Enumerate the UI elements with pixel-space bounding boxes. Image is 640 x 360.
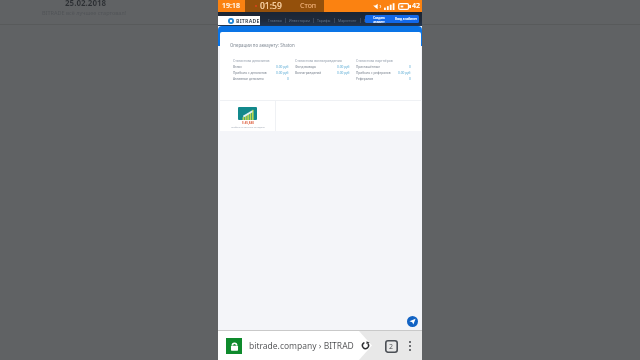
- staticText: 2: [389, 342, 394, 352]
- staticText: 0.00 руб: [337, 71, 350, 75]
- staticText: 19:18: [222, 1, 240, 11]
- staticText: Рефералов: [356, 77, 409, 81]
- button[interactable]: Маркетинг: [338, 18, 357, 23]
- staticText: Прибыль от BITRADE за неделю: [231, 126, 265, 129]
- staticText: 0.00 руб: [276, 71, 289, 75]
- button[interactable]: Инвесторам: [289, 18, 310, 23]
- staticText: Взнос: [233, 65, 276, 69]
- button[interactable]: Вопросы: [364, 18, 380, 23]
- staticText: Активные депозиты: [233, 77, 287, 81]
- staticText: Прибыль с депозитов: [233, 71, 276, 75]
- staticText: 0: [409, 65, 411, 69]
- staticText: Инвесторам: [289, 18, 310, 23]
- staticText: Вход в кабинет: [395, 17, 417, 21]
- button[interactable]: Создать аккаунт: [365, 15, 392, 23]
- staticText: Вопросы: [364, 18, 380, 23]
- staticText: 01:59: [260, 0, 282, 12]
- staticText: 0.00 руб: [337, 65, 350, 69]
- button[interactable]: Reload: [359, 339, 372, 352]
- staticText: Тарифы: [317, 18, 331, 23]
- staticText: Главная: [268, 18, 282, 23]
- staticText: Приглашённые: [356, 65, 409, 69]
- staticText: Статистика партнёров: [356, 58, 393, 63]
- staticText: Прибыль с рефералов: [356, 71, 398, 75]
- staticText: BITRADE: [236, 17, 260, 24]
- staticText: bitrade.company › BITRAD: [249, 340, 354, 352]
- staticText: Стоп: [300, 1, 317, 11]
- button[interactable]: Вход в кабинет: [392, 15, 419, 23]
- staticText: Операции по аккаунту: Shaton: [230, 42, 295, 48]
- staticText: 0.00 руб: [398, 71, 411, 75]
- button[interactable]: BITRADE home: [218, 16, 260, 25]
- staticText: BITRADE всё лучшее стартовал!: [42, 9, 127, 16]
- staticText: 0: [409, 77, 411, 81]
- button[interactable]: Главная: [268, 18, 282, 23]
- button[interactable]: Profit banner: [238, 107, 257, 120]
- staticText: Статистика депозитов: [233, 58, 270, 63]
- staticText: 0.00 руб: [276, 65, 289, 69]
- button[interactable]: Tabs: [382, 337, 400, 355]
- button[interactable]: Chat: [407, 316, 418, 327]
- staticText: Статистика вознаграждения: [295, 58, 342, 63]
- button[interactable]: Site info: [226, 338, 242, 354]
- staticText: Фонд вывода: [295, 65, 337, 69]
- button[interactable]: Тарифы: [317, 18, 331, 23]
- button[interactable]: More options: [401, 337, 419, 355]
- staticText: $ 45,840: [242, 121, 254, 125]
- staticText: 42: [412, 1, 421, 11]
- staticText: 0: [287, 77, 289, 81]
- staticText: Создать аккаунт: [373, 16, 385, 23]
- staticText: Вознаграждений: [295, 71, 337, 75]
- staticText: 25.02.2018: [65, 0, 107, 6]
- staticText: Маркетинг: [338, 18, 357, 23]
